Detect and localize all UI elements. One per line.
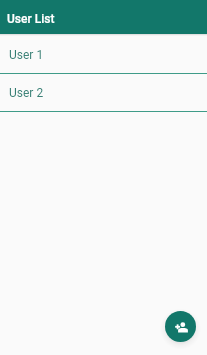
button[interactable]: User 1 [0, 36, 207, 74]
staticText: User 1 [9, 48, 44, 62]
button[interactable]: User 2 [0, 74, 207, 112]
button[interactable]: Add user [165, 311, 196, 342]
staticText: User List [7, 12, 55, 26]
staticText: User 2 [9, 86, 44, 100]
